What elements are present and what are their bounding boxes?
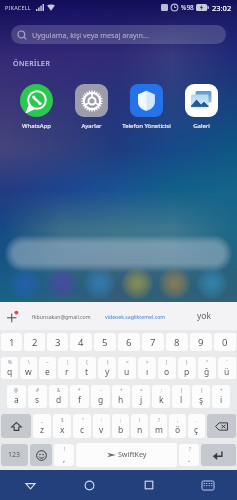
- staticText: PIKACELL: [5, 4, 31, 11]
- button[interactable]: (: [158, 357, 176, 379]
- button[interactable]: Galeri: [174, 84, 229, 130]
- button[interactable]: }: [98, 357, 116, 379]
- staticText: 123: [8, 450, 21, 460]
- button[interactable]: 1: [1, 333, 22, 351]
- button[interactable]: Back: [0, 470, 60, 500]
- button[interactable]: Add clip: [0, 302, 24, 330]
- button[interactable]: Home: [60, 470, 119, 500]
- staticText: l: [180, 394, 183, 406]
- button[interactable]: $: [53, 414, 71, 438]
- staticText: videoek.sagliktemel.com: [105, 313, 166, 320]
- staticText: g: [98, 394, 104, 406]
- button[interactable]: -: [91, 385, 110, 408]
- button[interactable]: 2: [24, 333, 45, 351]
- staticText: ğ: [204, 366, 210, 378]
- button[interactable]: Backspace: [207, 414, 236, 438]
- button[interactable]: Shift: [1, 414, 31, 438]
- button[interactable]: ?: [179, 444, 199, 466]
- button[interactable]: Uygulama, kişi veya mesaj arayın...: [11, 25, 226, 44]
- button[interactable]: {: [78, 357, 96, 379]
- staticText: -: [100, 387, 102, 393]
- staticText: %98: [181, 3, 194, 12]
- button[interactable]: !: [131, 414, 148, 438]
- button[interactable]: 9: [190, 333, 212, 351]
- staticText: 5: [102, 336, 108, 349]
- staticText: :: [101, 417, 103, 423]
- button[interactable]: Hide keyboard: [178, 470, 237, 500]
- staticText: n: [137, 424, 143, 436]
- button[interactable]: |: [58, 357, 76, 379]
- button[interactable]: +: [212, 385, 230, 408]
- button[interactable]: >: [138, 357, 156, 379]
- button[interactable]: 6: [118, 333, 140, 351]
- button[interactable]: Enter: [201, 444, 236, 466]
- button[interactable]: :: [152, 385, 170, 408]
- button[interactable]: videoek.sagliktemel.com: [98, 302, 172, 330]
- button[interactable]: 8: [166, 333, 188, 351]
- button[interactable]: fkbunsakan@gmail.com: [24, 302, 98, 330]
- button[interactable]: ,: [169, 414, 186, 438]
- staticText: ): [201, 387, 203, 393]
- staticText: k: [159, 394, 164, 406]
- staticText: 2: [32, 336, 38, 349]
- button[interactable]: Recents: [119, 470, 178, 500]
- button[interactable]: ": [73, 414, 91, 438]
- staticText: }: [107, 359, 109, 365]
- staticText: ¨: [226, 359, 229, 365]
- button[interactable]: .: [188, 414, 205, 438]
- staticText: :: [161, 387, 163, 393]
- button[interactable]: *: [70, 385, 89, 408]
- button[interactable]: %: [1, 357, 18, 379]
- button[interactable]: ?: [150, 414, 167, 438]
- staticText: m: [155, 424, 163, 436]
- button[interactable]: \: [20, 357, 37, 379]
- button[interactable]: (: [172, 385, 190, 408]
- staticText: ÖNERİLER: [13, 59, 51, 69]
- button[interactable]: !: [54, 444, 74, 466]
- button[interactable]: Emoji: [30, 444, 52, 466]
- button[interactable]: 7: [142, 333, 164, 351]
- button[interactable]: ): [178, 357, 196, 379]
- button[interactable]: =: [132, 385, 150, 408]
- staticText: ;: [120, 417, 122, 423]
- staticText: ç: [194, 424, 199, 436]
- button[interactable]: 0: [214, 333, 236, 351]
- button[interactable]: &: [49, 385, 68, 408]
- button[interactable]: ): [192, 385, 210, 408]
- staticText: #: [36, 387, 39, 393]
- button[interactable]: +: [112, 385, 130, 408]
- button[interactable]: Telefon Yöneticisi: [119, 84, 174, 130]
- staticText: _: [41, 417, 43, 423]
- button[interactable]: ~: [39, 357, 56, 379]
- staticText: ?: [189, 446, 191, 452]
- button[interactable]: 4: [70, 333, 92, 351]
- button[interactable]: #: [28, 385, 47, 408]
- button[interactable]: SwiftKey: [76, 443, 177, 467]
- staticText: $: [61, 417, 64, 423]
- button[interactable]: Ayarlar: [64, 84, 119, 130]
- button[interactable]: ¨: [218, 357, 236, 379]
- button[interactable]: <: [118, 357, 136, 379]
- button[interactable]: ;: [112, 414, 129, 438]
- button[interactable]: 5: [94, 333, 116, 351]
- staticText: \: [28, 359, 30, 365]
- staticText: <: [126, 359, 129, 365]
- staticText: °: [206, 359, 208, 365]
- button[interactable]: WhatsApp: [8, 84, 64, 130]
- button[interactable]: @: [7, 385, 26, 408]
- button[interactable]: yok: [172, 302, 237, 330]
- staticText: @: [14, 387, 19, 393]
- button[interactable]: _: [33, 414, 51, 438]
- staticText: Ayarlar: [81, 122, 102, 130]
- staticText: .: [188, 453, 191, 464]
- button[interactable]: °: [198, 357, 216, 379]
- button[interactable]: Numbers: [1, 444, 28, 466]
- staticText: Uygulama, kişi veya mesaj arayın...: [32, 30, 149, 40]
- staticText: u: [124, 366, 130, 378]
- staticText: ı: [146, 366, 149, 378]
- staticText: +: [120, 387, 123, 393]
- button[interactable]: :: [93, 414, 110, 438]
- staticText: 0: [222, 336, 228, 349]
- button[interactable]: 3: [47, 333, 68, 351]
- staticText: c: [80, 424, 85, 436]
